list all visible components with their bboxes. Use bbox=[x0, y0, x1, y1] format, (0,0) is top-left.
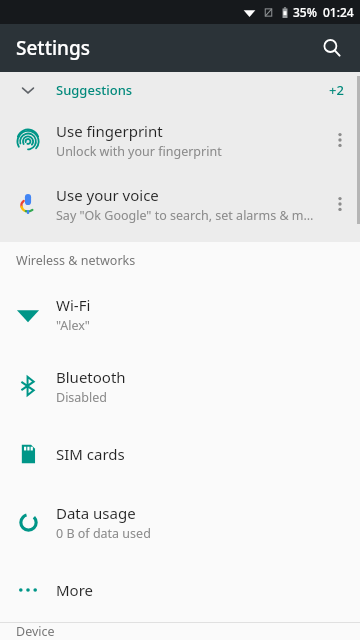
staticText: Suggestions bbox=[56, 81, 133, 99]
staticText: More bbox=[56, 580, 94, 600]
staticText: "Alex" bbox=[56, 317, 90, 334]
staticText: 0 B of data used bbox=[56, 525, 151, 542]
button[interactable]: More options bbox=[320, 108, 360, 172]
staticText: +2 bbox=[329, 81, 344, 99]
staticText: Use fingerprint bbox=[56, 121, 163, 141]
staticText: Unlock with your fingerprint bbox=[56, 143, 222, 160]
staticText: Wireless & networks bbox=[16, 252, 136, 269]
button[interactable]: Data usage bbox=[0, 486, 360, 558]
button[interactable]: SIM cards bbox=[0, 422, 360, 486]
button[interactable]: Bluetooth bbox=[0, 350, 360, 422]
staticText: Wi-Fi bbox=[56, 295, 91, 315]
staticText: Bluetooth bbox=[56, 367, 126, 387]
button[interactable]: Wi-Fi bbox=[0, 278, 360, 350]
button[interactable]: Use your voice bbox=[0, 172, 360, 236]
staticText: SIM cards bbox=[56, 444, 125, 464]
staticText: Disabled bbox=[56, 389, 108, 406]
staticText: Say "Ok Google" to search, set alarms & … bbox=[56, 207, 320, 224]
button[interactable]: Search bbox=[312, 28, 352, 68]
staticText: 35% bbox=[293, 4, 317, 20]
staticText: Data usage bbox=[56, 503, 136, 523]
staticText: Device bbox=[16, 623, 55, 640]
staticText: 01:24 bbox=[323, 4, 354, 20]
button[interactable]: Suggestions bbox=[0, 72, 360, 108]
staticText: Use your voice bbox=[56, 185, 159, 205]
button[interactable]: Use fingerprint bbox=[0, 108, 360, 172]
staticText: Settings bbox=[16, 35, 90, 61]
button[interactable]: More options bbox=[320, 172, 360, 236]
button[interactable]: More bbox=[0, 558, 360, 622]
